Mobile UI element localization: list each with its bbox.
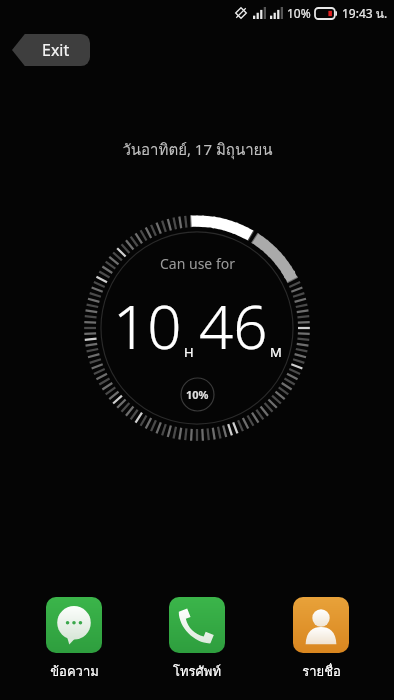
staticText: รายชื่อ <box>302 661 341 682</box>
button[interactable]: Contacts <box>271 597 371 682</box>
staticText: โทรศัพท์ <box>173 661 221 682</box>
staticText: M <box>270 343 282 361</box>
staticText: 46 <box>199 285 268 367</box>
staticText: 10% <box>287 5 311 21</box>
staticText: ข้อความ <box>50 661 99 682</box>
staticText: H <box>184 343 194 361</box>
button[interactable]: Messages <box>24 597 124 682</box>
staticText: 10% <box>186 387 209 402</box>
staticText: Exit <box>42 39 70 61</box>
staticText: วันอาทิตย์, 17 มิถุนายน <box>122 138 273 162</box>
staticText: 19:43 น. <box>342 4 388 23</box>
staticText: 10 <box>113 285 182 367</box>
button[interactable]: Phone <box>147 597 247 682</box>
staticText: Can use for <box>160 254 235 273</box>
button[interactable]: Exit <box>12 34 90 66</box>
